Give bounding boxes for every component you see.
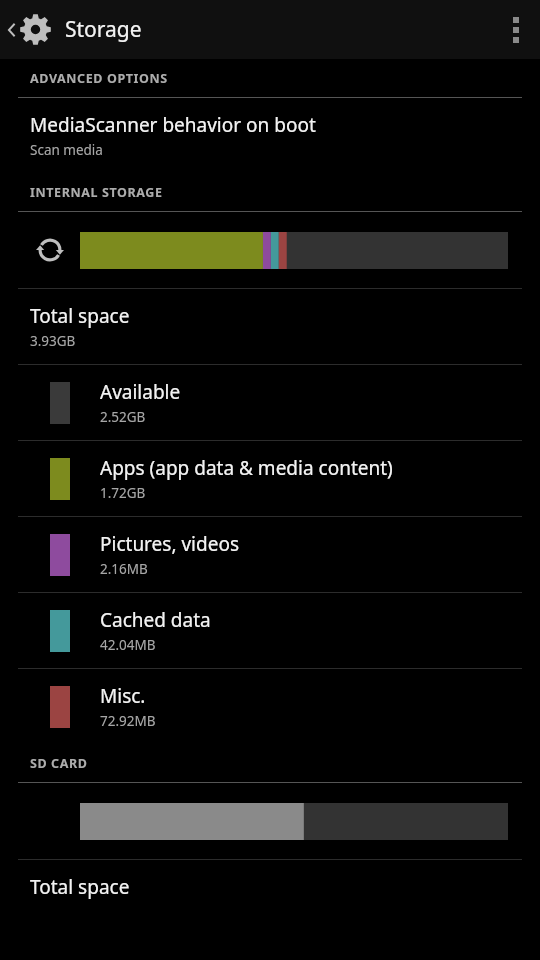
button[interactable]: Cached data (0, 593, 540, 668)
button[interactable]: Navigate up (0, 14, 59, 45)
staticText: Scan media (30, 141, 103, 159)
staticText: 3.93GB (30, 332, 76, 350)
staticText: SD CARD (30, 755, 88, 772)
staticText: Cached data (100, 607, 211, 633)
staticText: Pictures, videos (100, 531, 239, 557)
staticText: 72.92MB (100, 712, 156, 730)
button[interactable]: Refresh (32, 232, 68, 268)
staticText: Total space (30, 303, 130, 329)
staticText: ADVANCED OPTIONS (30, 70, 168, 87)
staticText: 2.16MB (100, 560, 148, 578)
button[interactable]: Apps (app data & media content) (0, 441, 540, 516)
button[interactable]: MediaScanner behavior on boot (0, 98, 540, 173)
button[interactable]: Pictures, videos (0, 517, 540, 592)
button[interactable]: Available (0, 365, 540, 440)
button[interactable]: Total space (0, 289, 540, 364)
staticText: Storage (65, 15, 142, 44)
staticText: 1.72GB (100, 484, 146, 502)
button[interactable]: Total space (0, 860, 540, 914)
staticText: MediaScanner behavior on boot (30, 112, 316, 138)
staticText: Misc. (100, 683, 146, 709)
staticText: 2.52GB (100, 408, 146, 426)
button[interactable]: More options (492, 0, 540, 59)
staticText: Apps (app data & media content) (100, 455, 393, 481)
staticText: 42.04MB (100, 636, 156, 654)
staticText: Available (100, 379, 181, 405)
button[interactable] (0, 783, 540, 859)
button[interactable]: Misc. (0, 669, 540, 744)
staticText: INTERNAL STORAGE (30, 184, 163, 201)
staticText: Total space (30, 874, 130, 900)
button[interactable]: Refresh (0, 212, 540, 288)
